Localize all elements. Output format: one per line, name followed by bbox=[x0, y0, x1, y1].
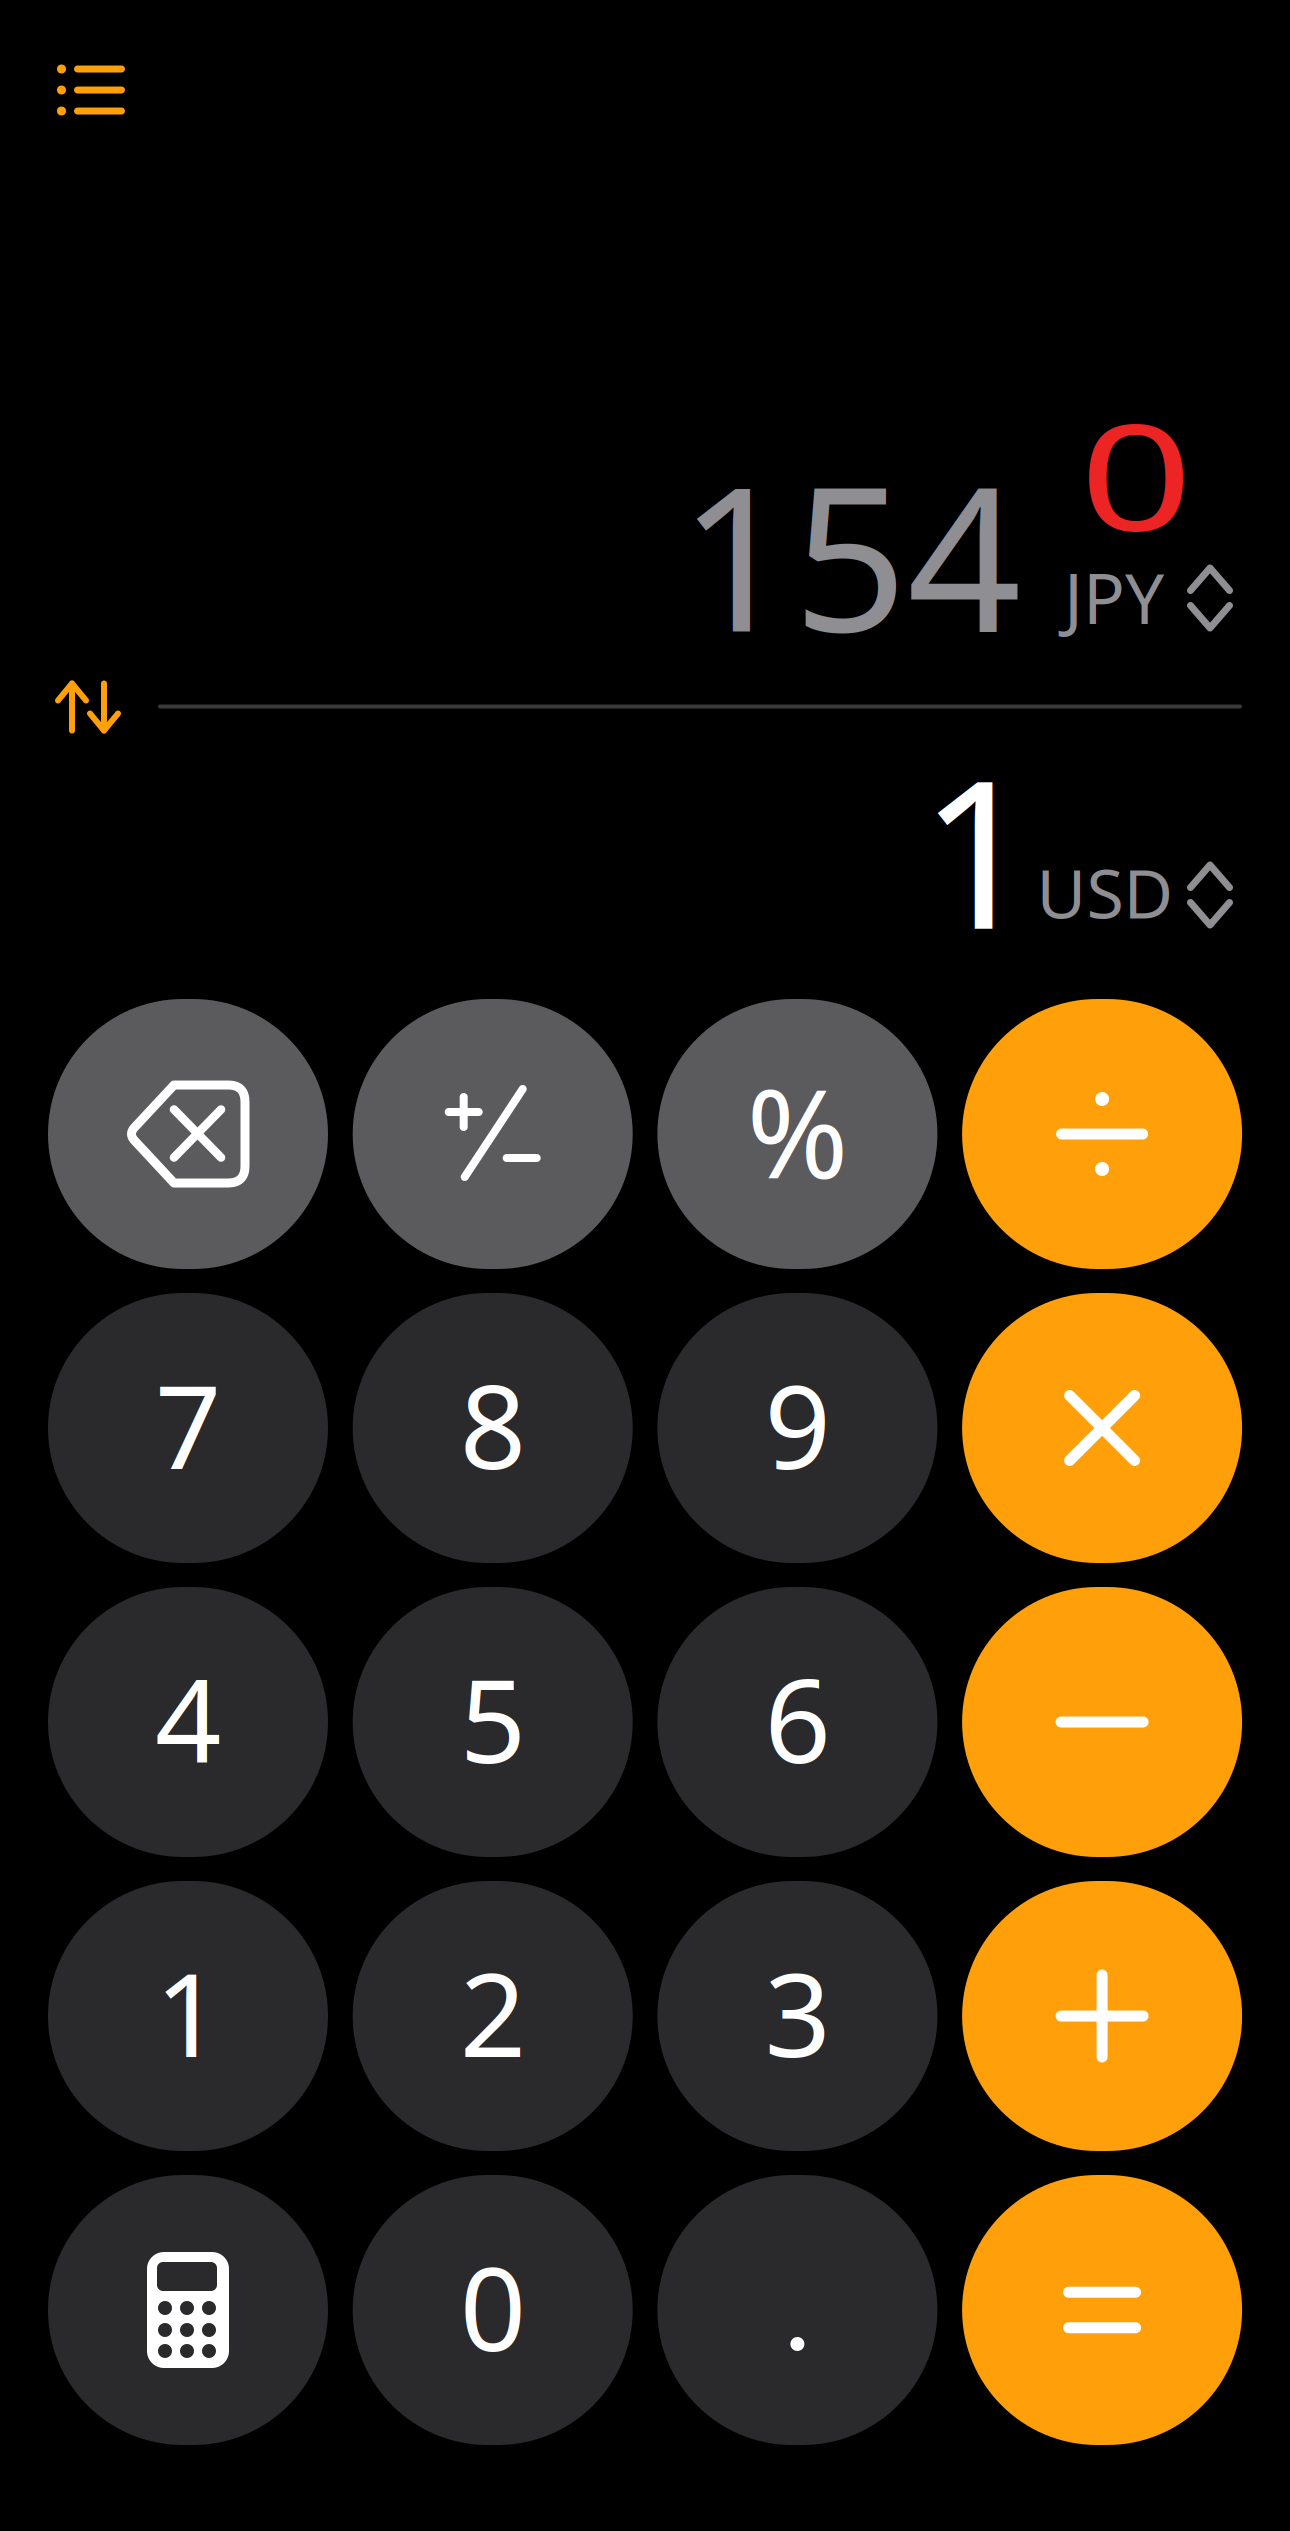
button[interactable]: History bbox=[31, 35, 151, 145]
staticText: 9 bbox=[764, 1347, 830, 1501]
staticText: 0 bbox=[1094, 377, 1178, 571]
button[interactable]: Decimal point bbox=[657, 2175, 937, 2445]
button[interactable]: 7 bbox=[48, 1293, 328, 1563]
button[interactable]: Change bottom currency bbox=[1179, 850, 1241, 940]
button[interactable]: Divide bbox=[962, 999, 1242, 1269]
staticText: 1 bbox=[919, 713, 1036, 985]
staticText: 4 bbox=[155, 1641, 221, 1795]
staticText: 2 bbox=[460, 1935, 526, 2089]
button[interactable]: Delete bbox=[48, 999, 328, 1269]
button[interactable]: Calculator bbox=[48, 2175, 328, 2445]
button[interactable]: Multiply bbox=[962, 1293, 1242, 1563]
button[interactable]: 3 bbox=[657, 1881, 937, 2151]
staticText: 0 bbox=[460, 2229, 526, 2383]
button[interactable]: Swap currencies bbox=[33, 657, 143, 757]
staticText: 5 bbox=[460, 1641, 526, 1795]
staticText: 154 bbox=[679, 421, 1021, 687]
staticText: 7 bbox=[155, 1347, 221, 1501]
button[interactable]: 6 bbox=[657, 1587, 937, 1857]
button[interactable]: 9 bbox=[657, 1293, 937, 1563]
staticText: 6 bbox=[764, 1641, 830, 1795]
button[interactable]: Change top currency bbox=[1179, 553, 1241, 643]
button[interactable]: Percent bbox=[657, 999, 937, 1269]
button[interactable]: 0 bbox=[353, 2175, 633, 2445]
button[interactable]: Plus bbox=[962, 1881, 1242, 2151]
button[interactable]: 5 bbox=[353, 1587, 633, 1857]
button[interactable]: 4 bbox=[48, 1587, 328, 1857]
button[interactable]: Plus Minus bbox=[353, 999, 633, 1269]
button[interactable]: 1 bbox=[48, 1881, 328, 2151]
staticText: % bbox=[746, 1050, 848, 1212]
button[interactable]: Equals bbox=[962, 2175, 1242, 2445]
staticText: 3 bbox=[764, 1935, 830, 2089]
button[interactable]: 2 bbox=[353, 1881, 633, 2151]
button[interactable]: Minus bbox=[962, 1587, 1242, 1857]
staticText: JPY bbox=[1064, 551, 1164, 643]
staticText: 1 bbox=[155, 1935, 221, 2089]
staticText: 8 bbox=[460, 1347, 526, 1501]
staticText: USD bbox=[1036, 847, 1173, 937]
button[interactable]: 8 bbox=[353, 1293, 633, 1563]
